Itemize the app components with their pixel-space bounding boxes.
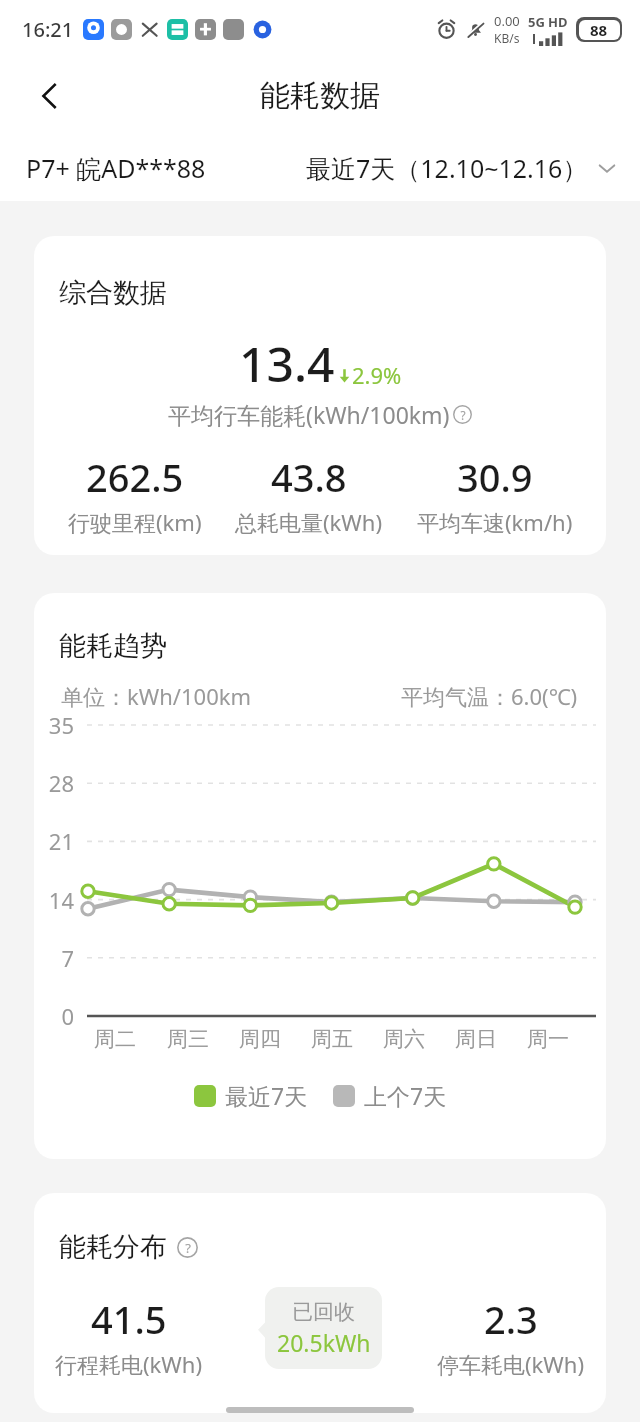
staticText: ? <box>460 407 466 423</box>
staticText: 41.5 <box>91 1293 167 1345</box>
staticText: 35 <box>34 710 74 740</box>
staticText: 0 <box>34 1001 74 1031</box>
staticText: 30.9 <box>457 451 533 503</box>
staticText: 周二 <box>94 1026 136 1052</box>
staticText: HD <box>548 13 568 31</box>
staticText: 停车耗电(kWh) <box>437 1349 585 1379</box>
button[interactable]: 最近7天（12.10~12.16） <box>306 151 620 185</box>
staticText: 7 <box>34 943 74 973</box>
staticText: 21 <box>34 826 74 856</box>
button[interactable]: Back <box>22 68 78 124</box>
staticText: 能耗分布 <box>59 1230 167 1264</box>
staticText: 行程耗电(kWh) <box>55 1349 203 1379</box>
staticText: 周三 <box>167 1026 209 1052</box>
staticText: 平均行车能耗(kWh/100km) <box>168 399 450 430</box>
staticText: 28 <box>34 768 74 798</box>
staticText: 总耗电量(kWh) <box>235 507 383 537</box>
staticText: 262.5 <box>86 451 184 503</box>
staticText: 周四 <box>239 1026 281 1052</box>
staticText: 已回收 <box>292 1299 355 1325</box>
staticText: P7+ 皖AD***88 <box>26 151 206 185</box>
staticText: 能耗趋势 <box>59 629 167 663</box>
staticText: 5G <box>528 13 545 31</box>
staticText: 最近7天（12.10~12.16） <box>306 151 588 185</box>
staticText: 周六 <box>383 1026 425 1052</box>
staticText: 周五 <box>311 1026 353 1052</box>
staticText: 单位：kWh/100km <box>61 681 252 711</box>
staticText: 周一 <box>527 1026 569 1052</box>
staticText: 平均气温：6.0(℃) <box>401 681 578 711</box>
button[interactable]: 能耗分布 <box>34 1193 606 1413</box>
staticText: 能耗数据 <box>260 77 380 115</box>
staticText: 2.3 <box>484 1293 538 1345</box>
staticText: 13.4 <box>239 331 335 396</box>
staticText: 平均车速(km/h) <box>417 507 573 537</box>
staticText: 上个7天 <box>364 1080 447 1111</box>
button[interactable]: 综合数据 <box>34 236 606 555</box>
staticText: 0.00 <box>494 12 520 30</box>
staticText: KB/s <box>494 30 520 46</box>
staticText: 14 <box>34 885 74 915</box>
staticText: 最近7天 <box>225 1080 308 1111</box>
staticText: 行驶里程(km) <box>68 507 202 537</box>
button[interactable]: 能耗趋势 <box>34 593 606 1159</box>
staticText: 2.9% <box>352 360 402 390</box>
staticText: 43.8 <box>271 451 347 503</box>
staticText: 20.5kWh <box>277 1327 371 1358</box>
staticText: ? <box>185 1239 191 1257</box>
staticText: 周日 <box>455 1026 497 1052</box>
staticText: 综合数据 <box>59 276 167 310</box>
staticText: 16:21 <box>22 16 74 43</box>
staticText: 88 <box>590 20 608 40</box>
